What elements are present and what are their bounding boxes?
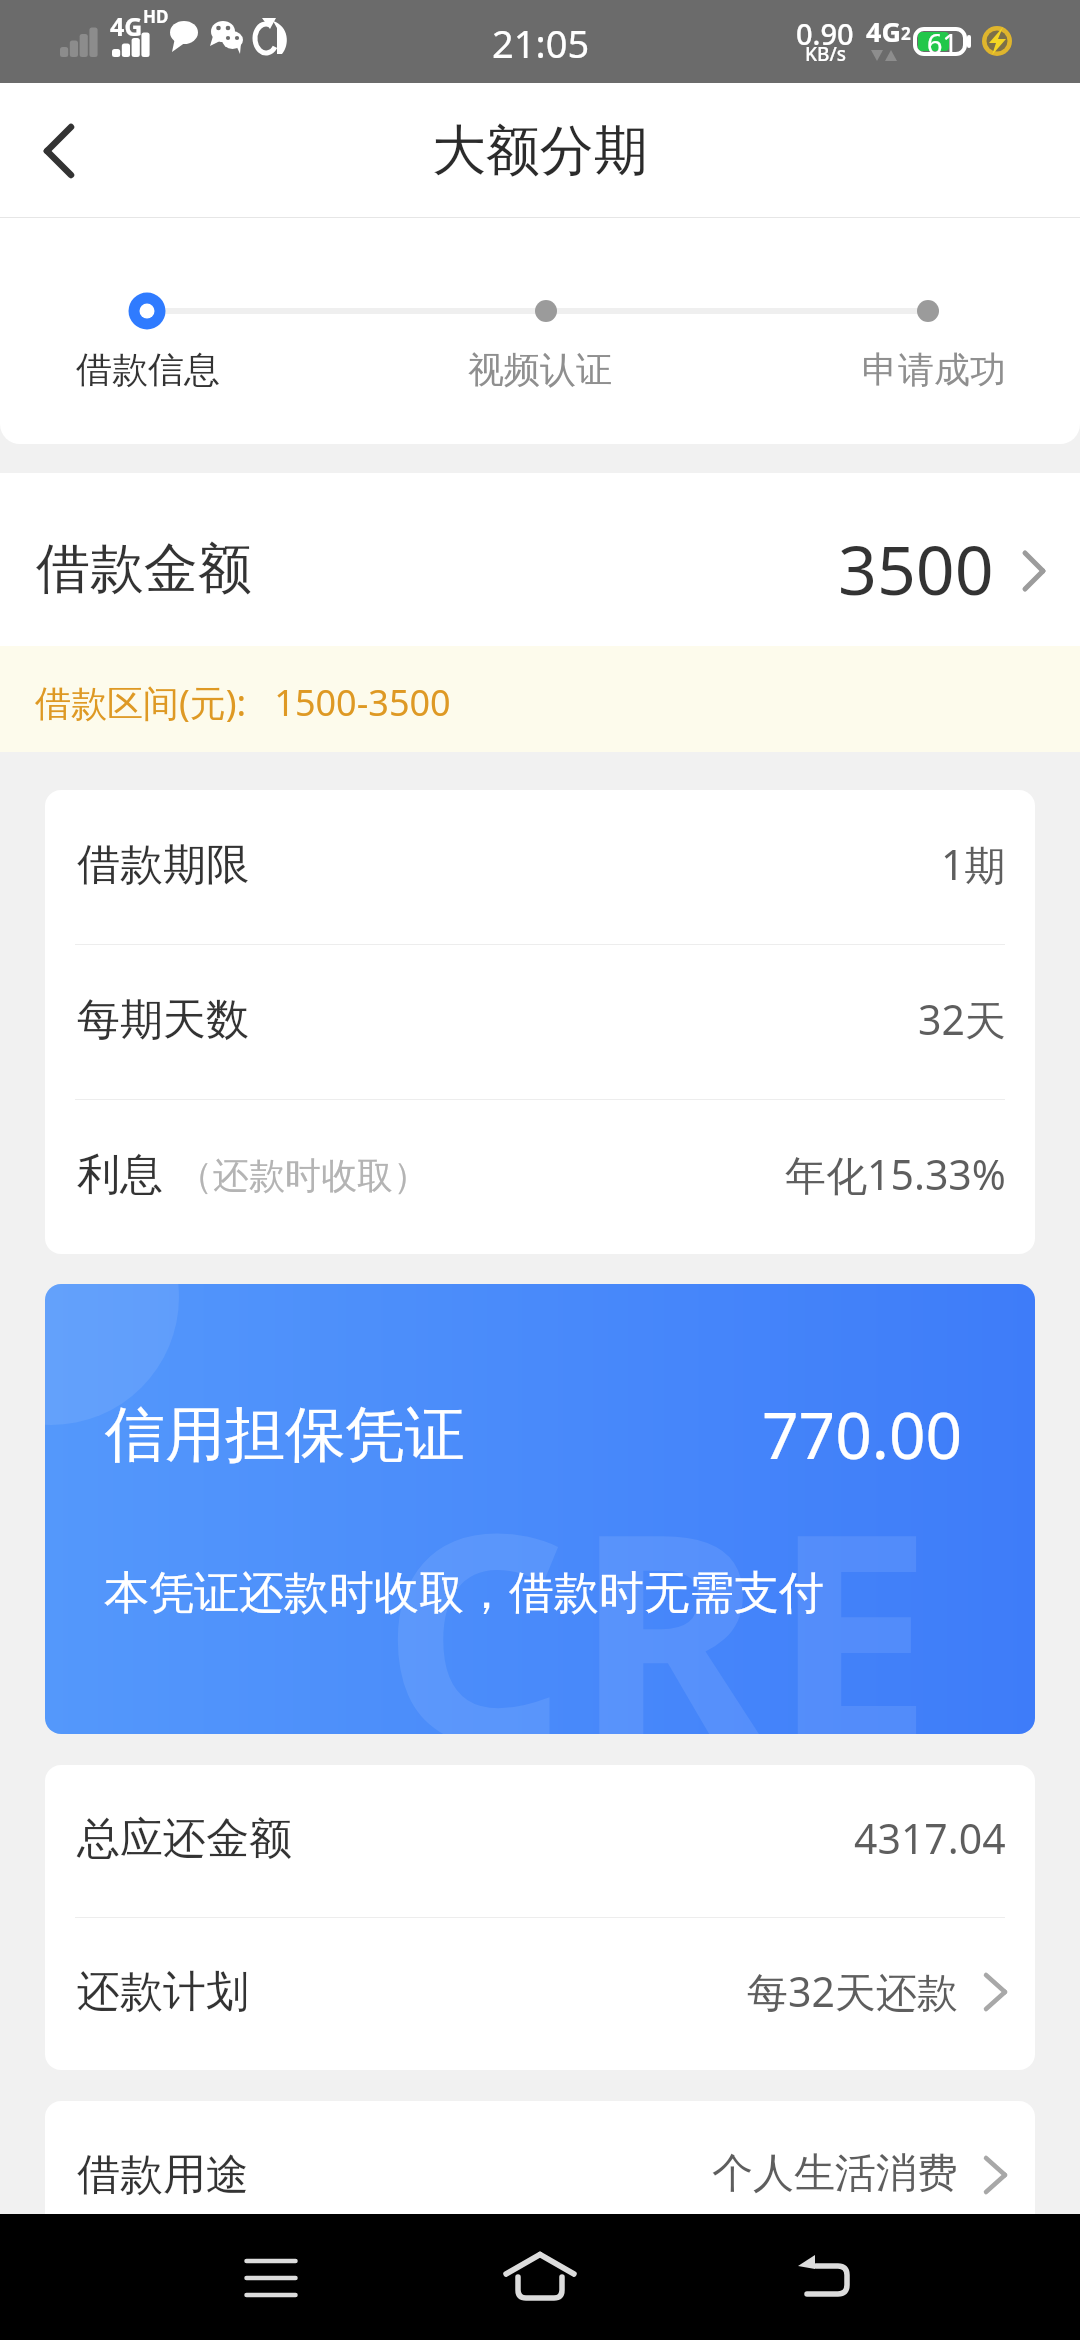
- staticText: 4G: [110, 9, 143, 43]
- staticText: 利息: [77, 1148, 163, 1202]
- staticText: （还款时收取）: [177, 1153, 429, 1198]
- button[interactable]: 利息: [45, 1100, 1035, 1254]
- staticText: 2: [901, 22, 911, 45]
- staticText: 32天: [918, 991, 1006, 1047]
- staticText: 770.00: [762, 1391, 963, 1478]
- button[interactable]: 借款用途: [45, 2101, 1035, 2253]
- button[interactable]: 还款计划: [45, 1918, 1035, 2070]
- staticText: 个人生活消费: [712, 2148, 958, 2200]
- staticText: 4G: [866, 13, 901, 50]
- button[interactable]: 每期天数: [45, 945, 1035, 1099]
- staticText: 每32天还款: [747, 1963, 958, 2019]
- button[interactable]: CRE: [45, 1284, 1035, 1734]
- staticText: 1期: [941, 836, 1006, 892]
- staticText: KB/s: [805, 41, 846, 67]
- button[interactable]: 总应还金额: [45, 1765, 1035, 1917]
- staticText: 61: [927, 25, 958, 62]
- button[interactable]: Home: [480, 2217, 600, 2337]
- staticText: 借款金额: [36, 535, 252, 603]
- staticText: 年化15.33%: [785, 1146, 1006, 1202]
- staticText: 21:05: [492, 17, 590, 69]
- staticText: 总应还金额: [77, 1812, 292, 1866]
- staticText: 借款区间(元): 1500-3500: [35, 678, 451, 727]
- staticText: 借款用途: [77, 2148, 249, 2202]
- button[interactable]: 借款金额: [0, 473, 1080, 646]
- staticText: CRE: [382, 1434, 942, 1734]
- staticText: 申请成功: [862, 347, 1006, 392]
- staticText: 视频认证: [468, 347, 612, 392]
- staticText: 3500: [838, 522, 994, 615]
- staticText: 4317.04: [854, 1810, 1006, 1866]
- staticText: 每期天数: [77, 993, 249, 1047]
- staticText: HD: [143, 5, 169, 28]
- staticText: 借款信息: [76, 347, 220, 392]
- staticText: 大额分期: [432, 117, 648, 185]
- staticText: 还款计划: [77, 1965, 249, 2019]
- staticText: 信用担保凭证: [105, 1397, 465, 1473]
- button[interactable]: Back: [766, 2217, 886, 2337]
- button[interactable]: Back: [0, 84, 118, 218]
- staticText: 0.90: [796, 14, 854, 53]
- button[interactable]: 借款期限: [45, 790, 1035, 944]
- staticText: 本凭证还款时收取，借款时无需支付: [104, 1565, 824, 1622]
- staticText: 借款期限: [77, 838, 249, 892]
- button[interactable]: Recent apps: [211, 2217, 331, 2337]
